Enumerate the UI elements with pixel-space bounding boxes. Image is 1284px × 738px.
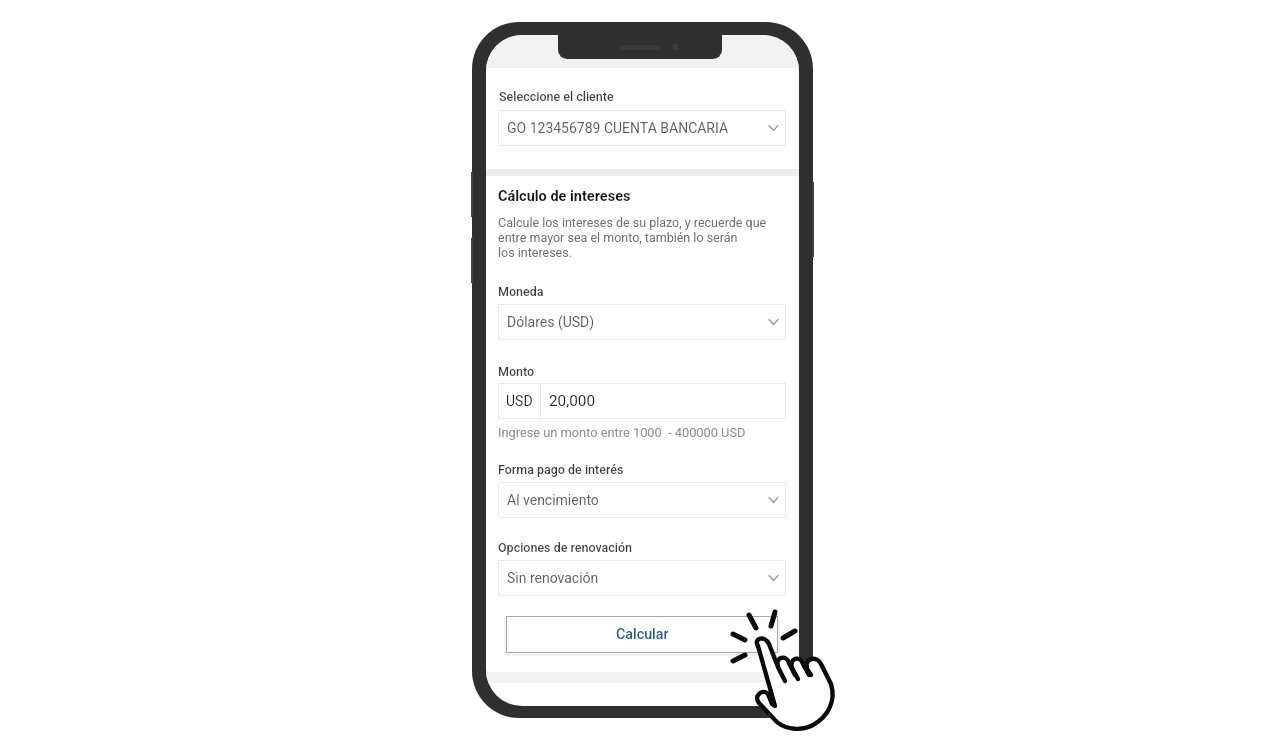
staticText: Forma pago de interés <box>498 462 624 477</box>
staticText: Sin renovación <box>507 570 599 586</box>
other: Tap here <box>0 0 1284 738</box>
button[interactable]: USD <box>498 383 786 419</box>
staticText: 20,000 <box>549 392 595 410</box>
button[interactable]: Calcular <box>506 616 778 653</box>
staticText: Cálculo de intereses <box>498 188 631 205</box>
staticText: USD <box>506 393 533 409</box>
staticText: Dólares (USD) <box>507 314 595 330</box>
staticText: GO 123456789 CUENTA BANCARIA <box>507 120 729 136</box>
button[interactable]: Al vencimiento <box>498 482 786 518</box>
button[interactable]: Sin renovación <box>498 560 786 596</box>
staticText: Moneda <box>498 284 544 299</box>
staticText: Monto <box>498 364 535 379</box>
button[interactable]: Dólares (USD) <box>498 304 786 340</box>
staticText: Opciones de renovación <box>498 540 633 555</box>
staticText: Al vencimiento <box>507 492 599 508</box>
staticText: Calcule los intereses de su plazo, y rec… <box>498 215 767 260</box>
staticText: Seleccione el cliente <box>499 89 614 104</box>
button[interactable]: GO 123456789 CUENTA BANCARIA <box>498 110 786 146</box>
staticText: Calcular <box>616 626 669 643</box>
staticText: Ingrese un monto entre 1000 - 400000 USD <box>498 425 746 440</box>
